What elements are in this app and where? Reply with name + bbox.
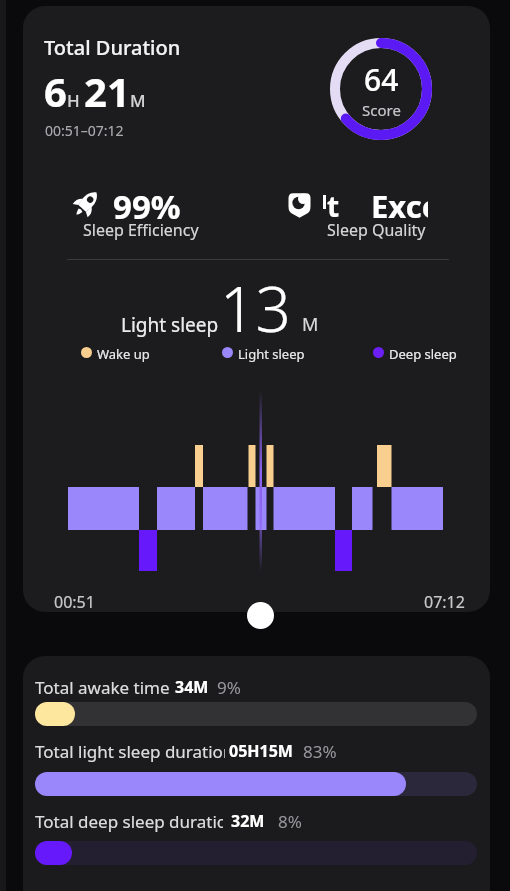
staticText: 05H15M xyxy=(229,740,293,762)
staticText: 13 xyxy=(220,266,291,350)
staticText: Total light sleep duration xyxy=(35,740,225,763)
staticText: Total deep sleep duration xyxy=(35,810,223,833)
button[interactable]: Total awake time xyxy=(23,656,490,891)
staticText: H xyxy=(67,89,80,112)
staticText: 21 xyxy=(84,64,130,118)
staticText: Deep sleep xyxy=(389,345,457,363)
button[interactable] xyxy=(247,602,274,629)
staticText: Sleep Quality xyxy=(327,219,426,241)
staticText: Total awake time xyxy=(35,676,173,699)
staticText: 00:51 xyxy=(54,591,95,612)
staticText: 34M xyxy=(175,676,209,698)
staticText: Light sleep xyxy=(121,312,219,338)
staticText: M xyxy=(130,89,146,112)
staticText: Excellent xyxy=(371,185,428,227)
button[interactable]: Total Duration xyxy=(23,6,490,612)
staticText: 83% xyxy=(303,740,337,763)
staticText: M xyxy=(302,312,319,337)
staticText: 8% xyxy=(278,810,302,833)
staticText: Sleep Efficiency xyxy=(83,219,199,241)
staticText: Score xyxy=(362,100,401,120)
staticText: 6 xyxy=(44,64,67,118)
staticText: 07:12 xyxy=(424,591,465,612)
staticText: 32M xyxy=(231,810,265,832)
staticText: 99% xyxy=(113,184,181,229)
staticText: 64 xyxy=(364,59,399,100)
staticText: t xyxy=(327,187,340,225)
staticText: Wake up xyxy=(97,345,150,363)
staticText: 9% xyxy=(217,676,241,699)
staticText: Light sleep xyxy=(238,345,305,363)
staticText: 00:51–07:12 xyxy=(45,121,124,140)
staticText: Total Duration xyxy=(44,34,181,61)
